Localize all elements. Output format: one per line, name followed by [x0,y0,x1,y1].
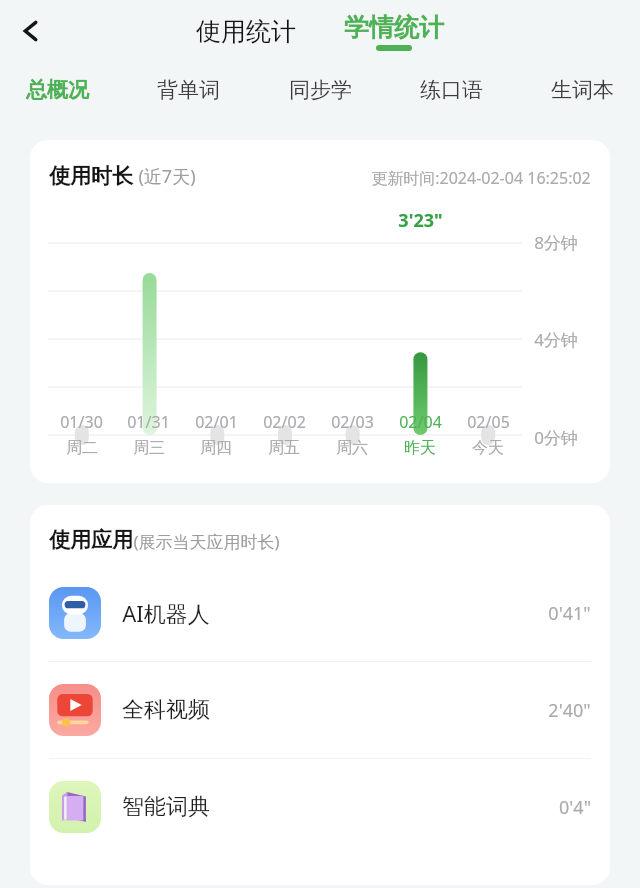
staticText: 0分钟 [534,426,578,449]
staticText: 3'23" [398,208,443,233]
button[interactable]: 背单词 [147,67,230,113]
staticText: 今天 [472,438,504,458]
staticText: 周五 [268,438,300,458]
staticText: 练口语 [420,77,483,103]
staticText: 02/05 [467,411,510,433]
button[interactable]: 学情统计 [332,10,456,53]
staticText: 周六 [336,438,368,458]
button[interactable]: 全科视频 [30,662,610,758]
staticText: 背单词 [157,77,220,103]
staticText: 02/01 [195,411,238,433]
staticText: 02/02 [263,411,306,433]
staticText: 周二 [66,438,98,458]
staticText: 周三 [133,438,165,458]
staticText: 4分钟 [534,328,578,351]
staticText: 0'4" [559,795,591,820]
button[interactable]: 总概况 [16,67,99,113]
staticText: (近7天) [138,164,196,189]
staticText: 生词本 [551,77,614,103]
button[interactable]: 同步学 [279,67,362,113]
staticText: 智能词典 [122,793,210,821]
staticText: 总概况 [26,77,89,103]
staticText: 01/31 [127,411,170,433]
staticText: 8分钟 [534,231,578,254]
staticText: 01/30 [60,411,103,433]
button[interactable]: 智能词典 [30,759,610,855]
staticText: 学情统计 [344,12,444,43]
button[interactable]: AI机器人 [30,565,610,661]
button[interactable]: 使用统计 [184,10,308,53]
button[interactable]: 练口语 [410,67,493,113]
staticText: 同步学 [289,77,352,103]
staticText: 昨天 [404,438,436,458]
button[interactable]: 生词本 [541,67,624,113]
staticText: AI机器人 [122,598,210,628]
staticText: 2'40" [548,698,591,723]
staticText: 02/03 [331,411,374,433]
staticText: 使用统计 [196,16,296,47]
button[interactable]: Back [6,6,56,56]
staticText: 更新时间:2024-02-04 16:25:02 [371,167,591,189]
staticText: 0'41" [548,601,591,626]
staticText: 全科视频 [122,696,210,724]
staticText: 使用应用 [49,527,133,553]
button[interactable]: 使用时长 [30,140,610,483]
staticText: 使用时长 [49,163,133,189]
staticText: (展示当天应用时长) [133,530,280,553]
staticText: 02/04 [399,411,442,433]
staticText: 周四 [200,438,232,458]
